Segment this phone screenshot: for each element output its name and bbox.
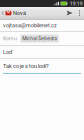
button[interactable]: Send [64,7,75,19]
button[interactable]: vojtasa@mobilenet.cz [0,20,84,31]
button[interactable]: Back [0,7,13,19]
staticText: Nová [13,10,26,16]
button[interactable]: Michal Šebesta [21,34,59,42]
button[interactable]: More options [75,7,84,19]
button[interactable]: Loď [0,46,84,58]
staticText: Michal Šebesta [22,36,57,41]
staticText: vojtasa@mobilenet.cz [3,22,57,29]
staticText: 19:19 [69,0,82,7]
staticText: Loď [3,49,13,55]
staticText: Tak co je s tou lodí? [3,63,49,69]
button[interactable]: Tak co je s tou lodí? [0,59,84,74]
staticText: Komu [3,35,17,42]
